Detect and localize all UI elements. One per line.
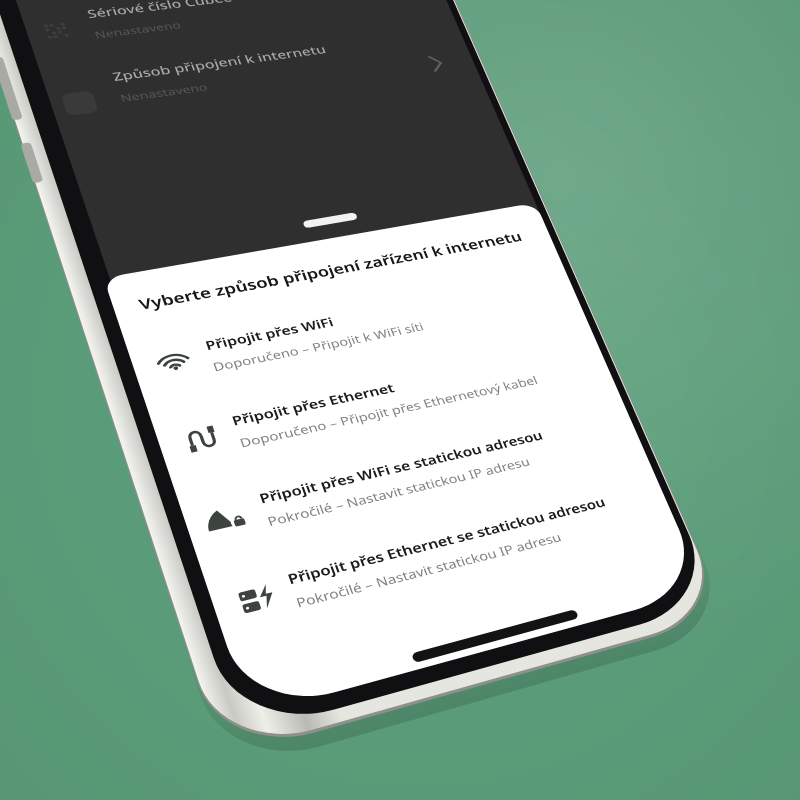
- button[interactable]: Připojit přes Ethernet se statickou adre…: [212, 453, 672, 639]
- button[interactable]: Připojit přes WiFi se statickou adresou: [185, 381, 640, 557]
- button[interactable]: Připojit přes WiFi: [135, 244, 576, 399]
- button[interactable]: Zavřít panel: [304, 198, 378, 239]
- button[interactable]: Způsob připojení k internetu: [46, 8, 466, 119]
- button[interactable]: Připojit přes Ethernet: [159, 311, 607, 476]
- button[interactable]: Sériové číslo Cubee: [24, 0, 439, 50]
